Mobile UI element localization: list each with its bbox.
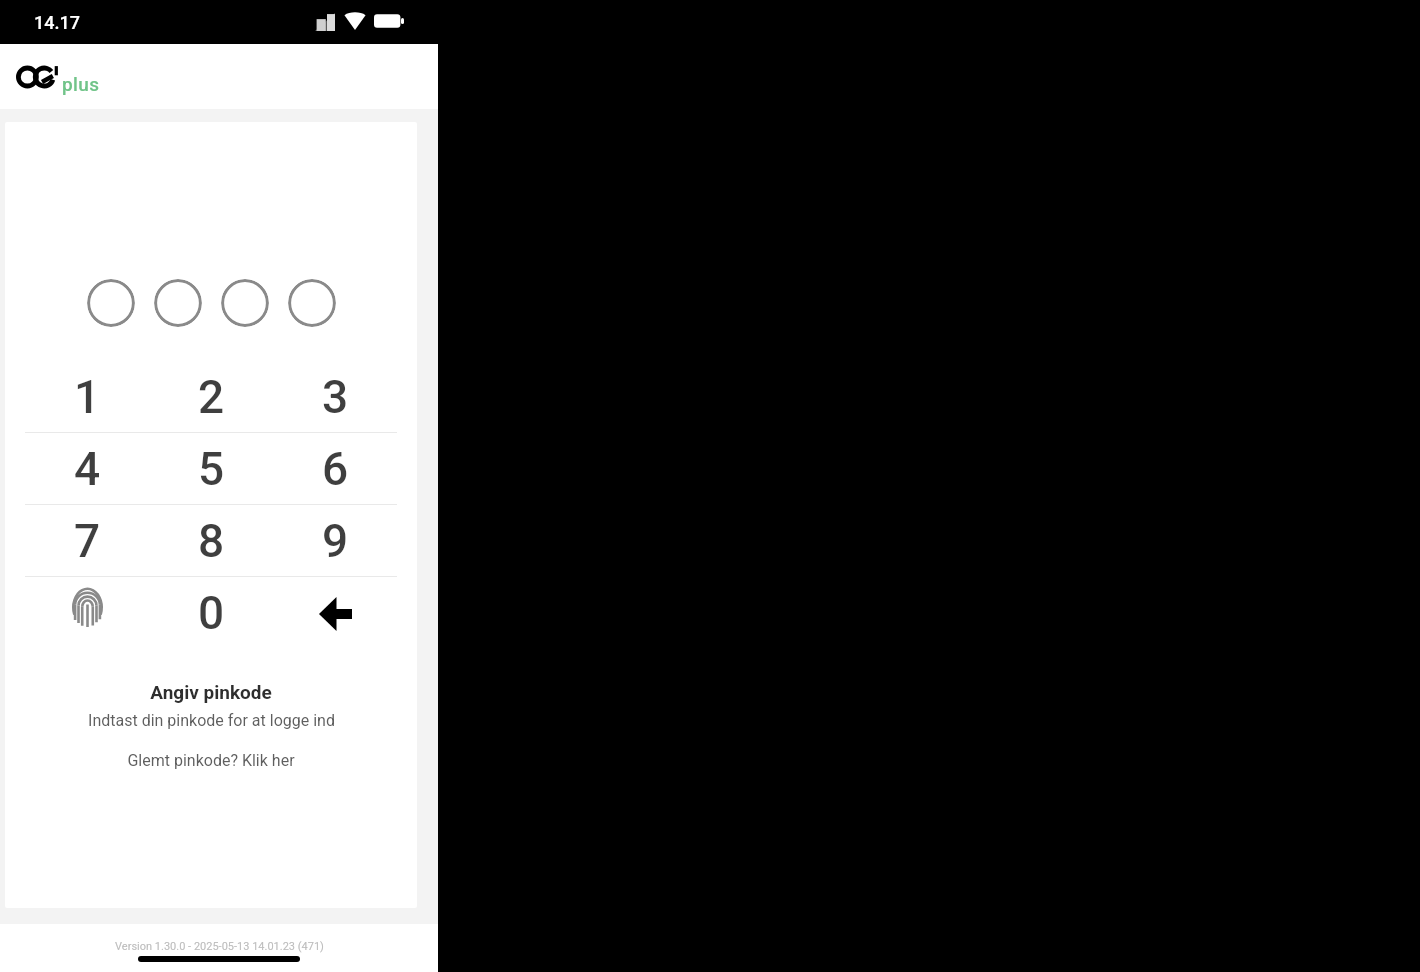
staticText: 2 — [198, 370, 225, 424]
button[interactable]: Fingerprint login — [25, 577, 149, 649]
staticText: 8 — [198, 514, 225, 568]
staticText: 14.17 — [34, 12, 80, 33]
button[interactable]: 2 — [149, 361, 273, 432]
staticText: Indtast din pinkode for at logge ind — [88, 711, 335, 730]
staticText: 5 — [198, 442, 225, 496]
button[interactable]: 7 — [25, 505, 149, 576]
staticText: 3 — [322, 370, 349, 424]
button[interactable]: 8 — [149, 505, 273, 576]
button[interactable]: 6 — [273, 433, 397, 504]
button[interactable]: 5 — [149, 433, 273, 504]
staticText: Angiv pinkode — [150, 681, 272, 703]
button[interactable]: 3 — [273, 361, 397, 432]
staticText: 9 — [322, 514, 349, 568]
staticText: Glemt pinkode? Klik her — [127, 751, 295, 770]
staticText: 4 — [74, 442, 101, 496]
button[interactable]: Glemt pinkode? Klik her — [117, 748, 305, 773]
button[interactable]: 0 — [149, 577, 273, 649]
staticText: 0 — [198, 586, 225, 640]
staticText: 1 — [74, 370, 101, 424]
staticText: 6 — [322, 442, 349, 496]
staticText: plus — [62, 73, 100, 95]
button[interactable]: 4 — [25, 433, 149, 504]
button[interactable]: Delete — [273, 577, 397, 649]
staticText: Version 1.30.0 - 2025-05-13 14.01.23 (47… — [115, 940, 324, 953]
button[interactable]: 1 — [25, 361, 149, 432]
button[interactable]: 9 — [273, 505, 397, 576]
staticText: 7 — [74, 514, 101, 568]
